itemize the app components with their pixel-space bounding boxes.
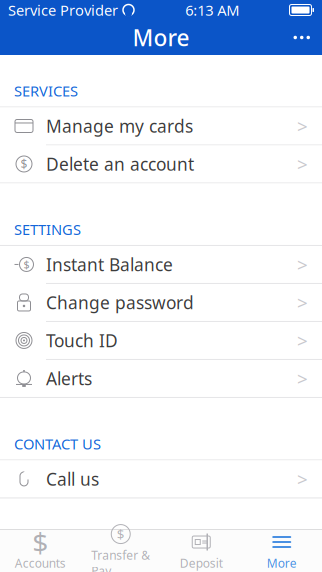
- button[interactable]: More options: [281, 24, 322, 51]
- staticText: More: [267, 555, 297, 571]
- staticText: >: [297, 152, 308, 176]
- staticText: SERVICES: [14, 81, 78, 100]
- staticText: 6:13 AM: [185, 0, 239, 20]
- staticText: $: [20, 156, 27, 172]
- staticText: $: [32, 523, 48, 561]
- staticText: Change password: [46, 291, 194, 314]
- staticText: Deposit: [180, 555, 223, 571]
- staticText: Transfer & Pay: [91, 547, 150, 572]
- staticText: >: [297, 252, 308, 277]
- staticText: Touch ID: [46, 329, 118, 352]
- button[interactable]: Change password: [0, 284, 322, 322]
- staticText: Service Provider: [8, 0, 118, 20]
- button[interactable]: Manage my cards: [0, 107, 322, 145]
- button[interactable]: $: [0, 246, 322, 284]
- staticText: >: [297, 466, 308, 491]
- staticText: More: [132, 22, 189, 52]
- staticText: Delete an account: [46, 152, 194, 175]
- staticText: Call us: [46, 467, 99, 490]
- button[interactable]: $: [80, 530, 161, 572]
- staticText: >: [297, 328, 308, 353]
- staticText: Manage my cards: [46, 114, 193, 137]
- button[interactable]: Alerts: [0, 360, 322, 398]
- button[interactable]: More: [241, 530, 322, 572]
- staticText: >: [297, 290, 308, 315]
- staticText: >: [297, 366, 308, 391]
- staticText: CONTACT US: [14, 434, 101, 453]
- staticText: $: [117, 525, 125, 543]
- staticText: Accounts: [15, 555, 66, 571]
- button[interactable]: Call us: [0, 460, 322, 498]
- button[interactable]: $: [0, 530, 80, 572]
- staticText: Instant Balance: [46, 253, 173, 276]
- button[interactable]: Touch ID: [0, 322, 322, 360]
- button[interactable]: $: [0, 145, 322, 183]
- staticText: Alerts: [46, 367, 92, 390]
- staticText: >: [297, 114, 308, 138]
- staticText: $: [23, 257, 29, 272]
- staticText: SETTINGS: [14, 219, 81, 239]
- button[interactable]: Deposit: [161, 530, 241, 572]
